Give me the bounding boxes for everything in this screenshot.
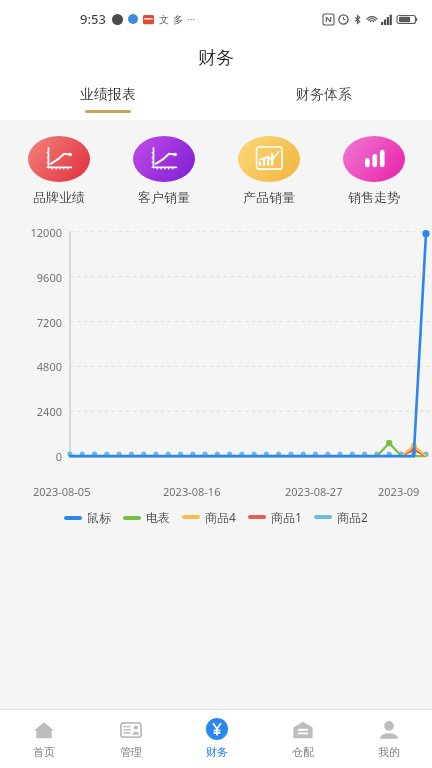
staticText: 财务: [206, 745, 228, 759]
staticText: 销售走势: [348, 189, 400, 205]
staticText: 文: [159, 13, 169, 26]
staticText: 12000: [0, 225, 62, 240]
button[interactable]: 财务: [174, 710, 260, 768]
button[interactable]: 品牌业绩: [6, 134, 111, 207]
staticText: 2023-08-05: [33, 484, 91, 499]
staticText: 商品4: [205, 509, 236, 525]
staticText: 鼠标: [87, 510, 111, 525]
staticText: 4800: [0, 359, 62, 374]
staticText: ···: [187, 12, 196, 26]
staticText: 财务体系: [296, 86, 352, 104]
staticText: 2023-09: [378, 484, 420, 499]
staticText: 多: [173, 13, 183, 26]
staticText: 管理: [120, 745, 142, 759]
button[interactable]: 首页: [0, 710, 87, 768]
button[interactable]: 产品销量: [216, 134, 321, 207]
staticText: 客户销量: [138, 189, 190, 205]
staticText: 2400: [0, 404, 62, 419]
button[interactable]: 仓配: [260, 710, 346, 768]
staticText: 电表: [146, 510, 170, 525]
staticText: 商品1: [271, 509, 302, 525]
staticText: 9600: [0, 270, 62, 285]
staticText: 0: [0, 449, 62, 464]
staticText: 仓配: [292, 745, 314, 759]
button[interactable]: 业绩报表: [0, 78, 216, 120]
staticText: 财务: [198, 47, 234, 70]
button[interactable]: 客户销量: [111, 134, 216, 207]
staticText: 首页: [33, 745, 55, 759]
staticText: 2023-08-27: [285, 484, 343, 499]
staticText: 商品2: [337, 509, 368, 525]
staticText: 产品销量: [243, 189, 295, 205]
staticText: 品牌业绩: [33, 189, 85, 205]
button[interactable]: 我的: [346, 710, 432, 768]
staticText: 7200: [0, 315, 62, 330]
staticText: 我的: [378, 745, 400, 759]
button[interactable]: 管理: [87, 710, 174, 768]
button[interactable]: 销售走势: [321, 134, 426, 207]
staticText: 2023-08-16: [163, 484, 221, 499]
button[interactable]: 财务体系: [216, 78, 432, 120]
staticText: 业绩报表: [80, 86, 136, 104]
staticText: 9:53: [80, 10, 106, 28]
